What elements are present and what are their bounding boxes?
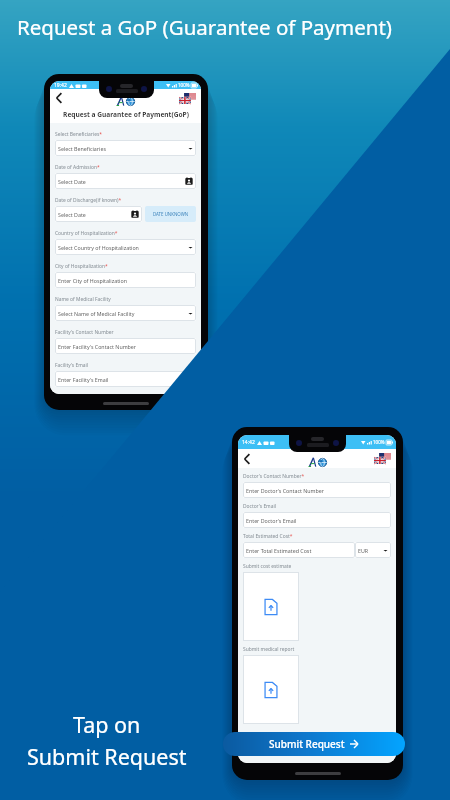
staticText: Enter Facility's Email <box>58 376 109 383</box>
staticText: Submit medical report <box>243 646 295 653</box>
staticText: City of Hospitalization* <box>55 263 108 270</box>
staticText: Select Country of Hospitalization <box>58 244 139 251</box>
staticText: Submit Request <box>269 737 345 751</box>
staticText: Submit cost estimate <box>243 563 292 570</box>
button[interactable]: Upload file <box>243 572 299 641</box>
staticText: Enter Total Estimated Cost <box>246 547 312 554</box>
staticText: Total Estimated Cost* <box>243 533 293 540</box>
button[interactable]: Enter Doctor's Email <box>243 512 391 528</box>
button[interactable]: Select Date <box>55 173 196 189</box>
button[interactable]: Enter Facility's Contact Number <box>55 338 196 354</box>
staticText: EUR <box>358 547 369 554</box>
staticText: 14:42 <box>242 439 255 446</box>
staticText: 100% <box>373 439 385 445</box>
staticText: Select Date <box>58 211 86 218</box>
staticText: 19:42 <box>54 82 67 89</box>
button[interactable]: Select Country of Hospitalization <box>55 239 196 255</box>
staticText: Request a Guarantee of Payment(GoP) <box>63 110 189 119</box>
staticText: Date of Discharge(if known)* <box>55 197 122 204</box>
button[interactable]: Back <box>52 91 66 105</box>
staticText: Request a GoP (Guarantee of Payment) <box>17 13 393 41</box>
staticText: Select Name of Medical Facility <box>58 310 135 317</box>
button[interactable]: Back <box>240 452 254 466</box>
staticText: Enter Facility's Contact Number <box>58 343 137 350</box>
button[interactable]: Enter Facility's Email <box>55 371 196 387</box>
button[interactable]: Enter Doctor's Contact Number <box>243 482 391 498</box>
staticText: Tap on <box>73 710 141 739</box>
staticText: Select Beneficiaries* <box>55 131 102 138</box>
button[interactable]: Enter Total Estimated Cost <box>243 542 355 558</box>
staticText: Date of Admission* <box>55 164 100 171</box>
button[interactable]: Select Beneficiaries <box>55 140 196 156</box>
button[interactable]: Upload file <box>243 655 299 724</box>
staticText: Select Date <box>58 178 86 185</box>
staticText: 100% <box>178 82 190 88</box>
staticText: Select Beneficiaries <box>58 145 106 152</box>
staticText: Enter Doctor's Email <box>246 517 297 524</box>
staticText: Enter City of Hospitalization <box>58 277 127 284</box>
button[interactable]: Language <box>374 453 391 464</box>
button[interactable]: Submit Request <box>223 732 405 756</box>
button[interactable]: EUR <box>355 542 391 558</box>
staticText: Country of Hospitalization* <box>55 230 118 237</box>
staticText: Doctor's Email <box>243 503 276 510</box>
staticText: Doctor's Contact Number* <box>243 473 305 480</box>
button[interactable]: Select Date <box>55 206 142 222</box>
button[interactable]: DATE UNKNOWN <box>145 206 196 222</box>
staticText: Name of Medical Facility <box>55 296 111 303</box>
staticText: Submit Request <box>27 742 187 771</box>
staticText: Enter Doctor's Contact Number <box>246 487 324 494</box>
button[interactable]: Enter City of Hospitalization <box>55 272 196 288</box>
staticText: DATE UNKNOWN <box>153 211 189 217</box>
button[interactable]: Language <box>179 93 196 104</box>
staticText: Facility's Contact Number <box>55 329 114 336</box>
staticText: Facility's Email <box>55 362 88 369</box>
button[interactable]: Select Name of Medical Facility <box>55 305 196 321</box>
